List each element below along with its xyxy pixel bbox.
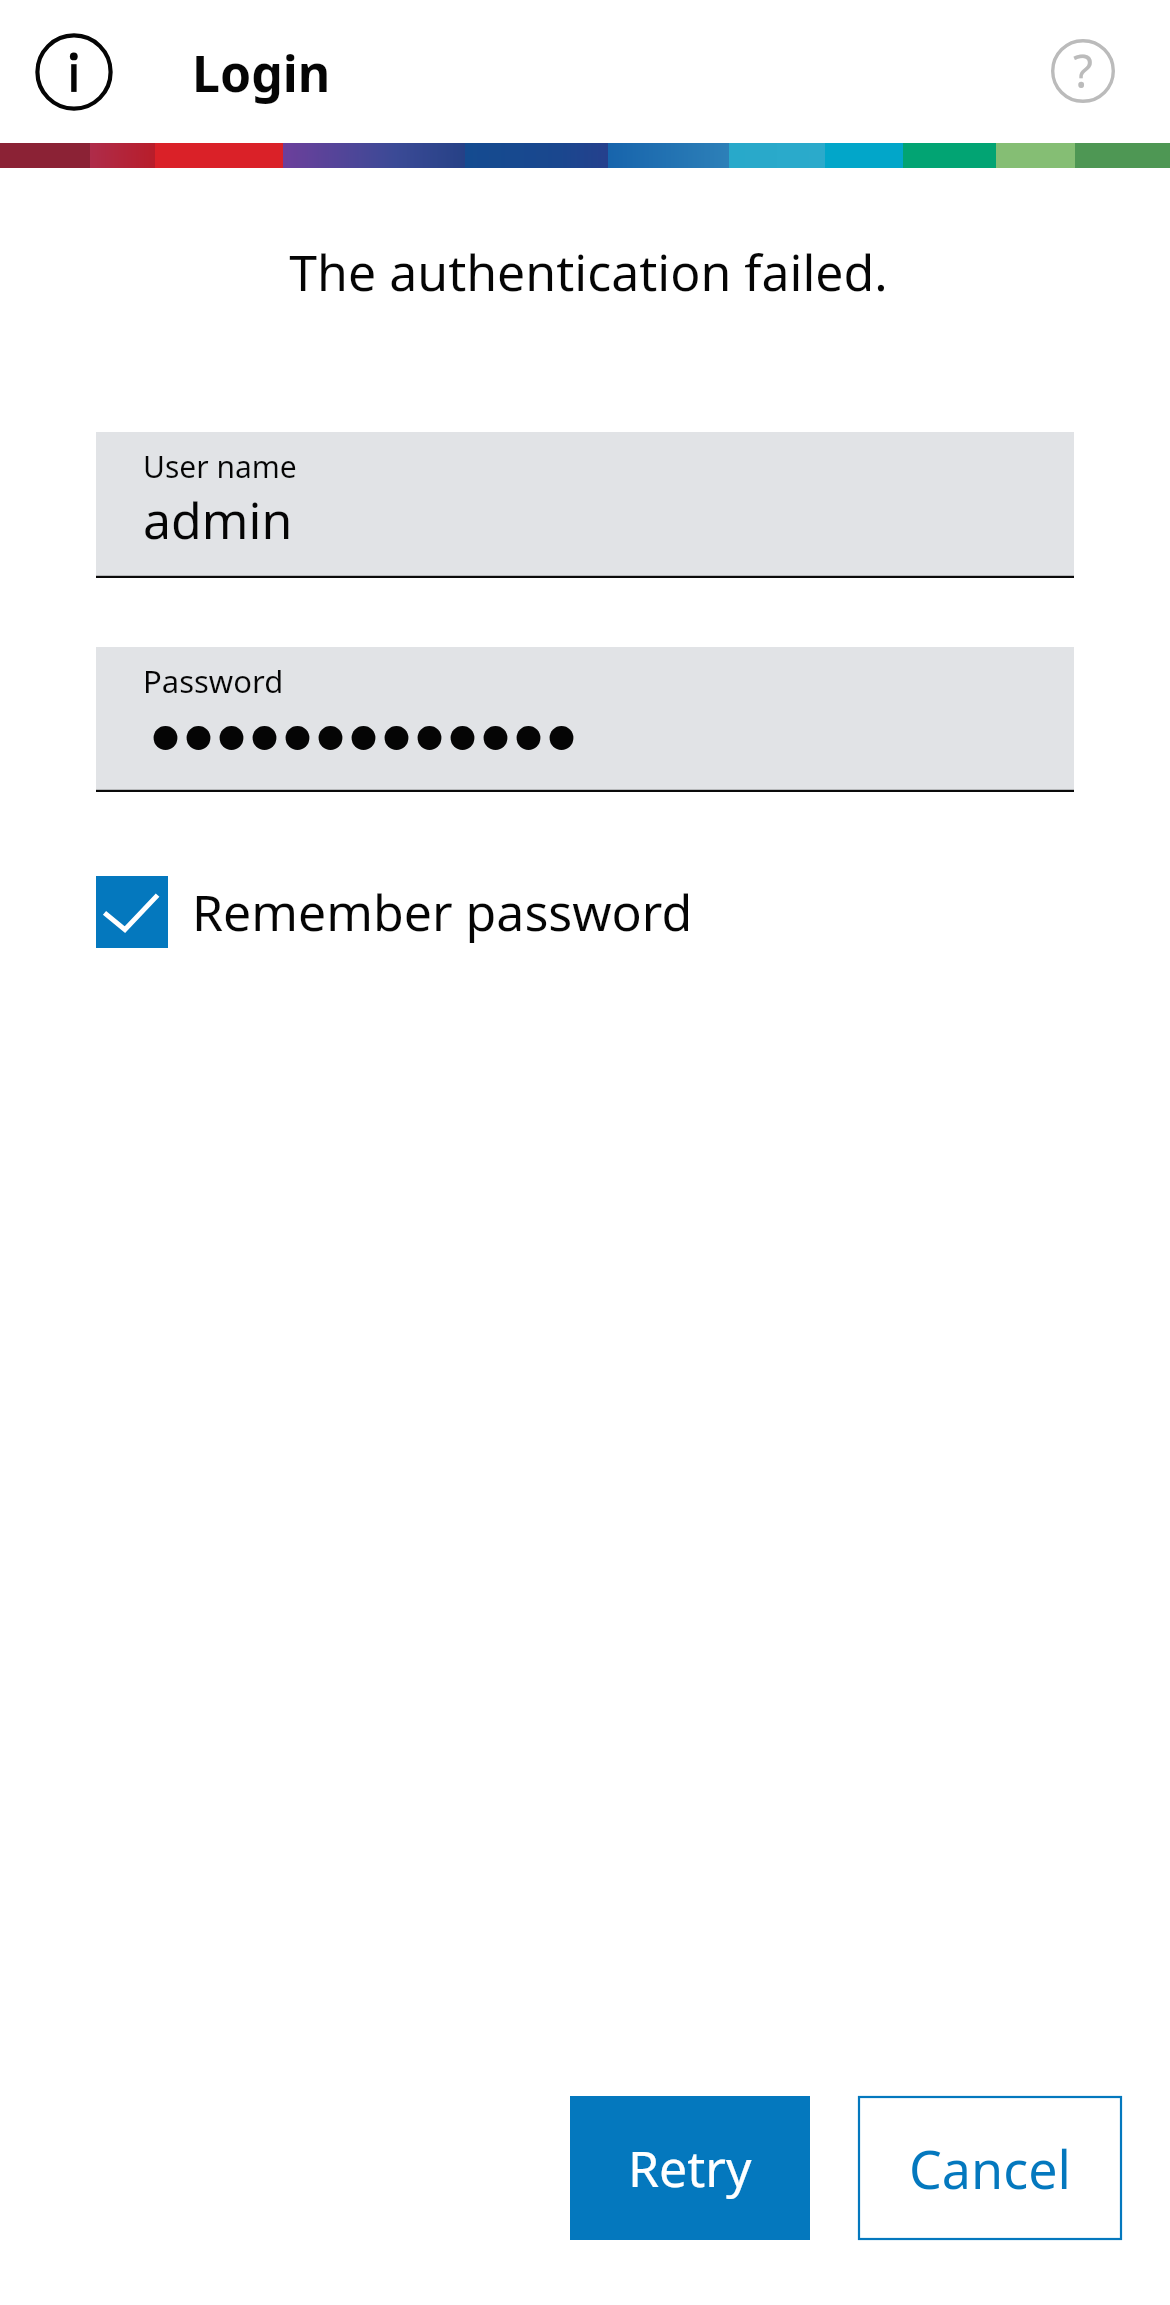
button[interactable]: Password — [96, 647, 1074, 792]
button[interactable]: Help — [1035, 23, 1131, 119]
staticText: Remember password — [192, 878, 693, 946]
button[interactable]: Retry — [570, 2096, 810, 2240]
button[interactable]: User name — [96, 432, 1074, 578]
staticText: Retry — [628, 2134, 752, 2202]
button[interactable]: Information — [23, 21, 125, 123]
staticText: Login — [192, 39, 331, 107]
staticText: Password — [143, 660, 284, 702]
button[interactable]: Cancel — [858, 2096, 1122, 2240]
staticText: The authentication failed. — [289, 238, 888, 306]
button[interactable]: Remember password — [96, 876, 693, 948]
staticText: admin — [143, 486, 293, 554]
staticText: ? — [1073, 39, 1093, 102]
staticText: Cancel — [909, 2133, 1071, 2204]
staticText: User name — [143, 446, 297, 487]
